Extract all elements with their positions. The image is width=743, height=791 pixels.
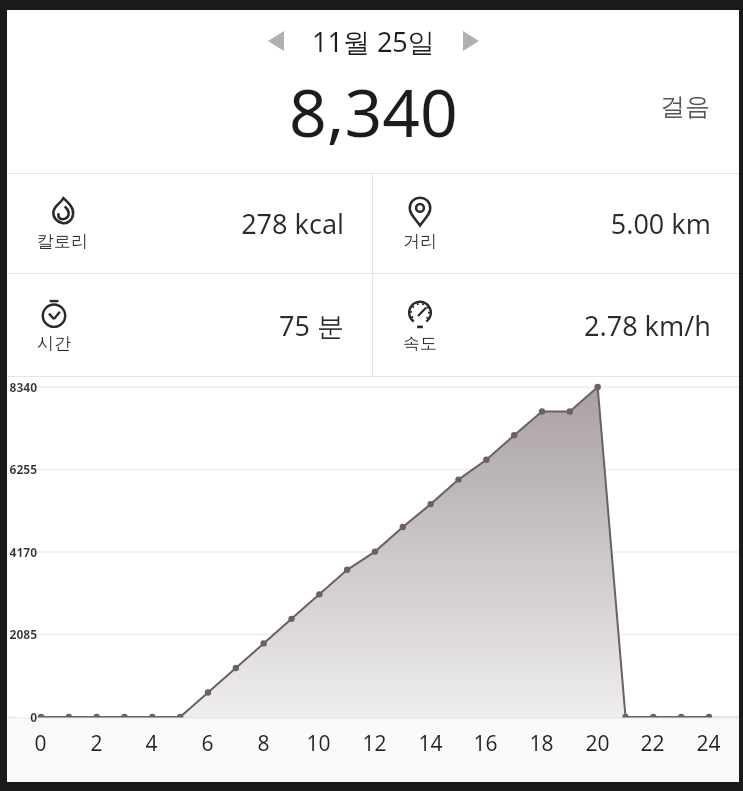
staticText: 12 [362,729,387,758]
staticText: 278 kcal [241,205,344,242]
button[interactable]: 시간 [7,274,372,376]
staticText: 22 [640,729,665,758]
staticText: 0 [34,729,47,758]
staticText: 75 분 [279,307,344,344]
staticText: 속도 [403,333,437,354]
staticText: 칼로리 [37,231,88,252]
button[interactable]: 칼로리 [7,174,372,273]
staticText: 14 [418,729,443,758]
staticText: 2085 [7,626,37,642]
staticText: 8,340 [289,66,458,156]
staticText: 18 [529,729,554,758]
button[interactable]: 속도 [373,274,739,376]
staticText: 거리 [403,231,437,252]
staticText: 0 [7,709,37,725]
staticText: 2.78 km/h [584,307,711,344]
staticText: 5.00 km [610,205,711,242]
button[interactable]: 거리 [373,174,739,273]
staticText: 10 [306,729,331,758]
staticText: 2 [90,729,103,758]
staticText: 6 [201,729,214,758]
staticText: 4170 [7,544,37,560]
staticText: 8 [257,729,270,758]
staticText: 24 [696,729,721,758]
staticText: 4 [145,729,158,758]
staticText: 6255 [7,461,37,477]
button[interactable]: Next day [449,19,493,63]
staticText: 8340 [7,379,37,395]
button[interactable]: Previous day [254,19,298,63]
staticText: 시간 [37,333,71,354]
staticText: 11월 25일 [312,23,435,60]
staticText: 걸음 [660,91,710,122]
staticText: 20 [585,729,610,758]
staticText: 16 [473,729,498,758]
